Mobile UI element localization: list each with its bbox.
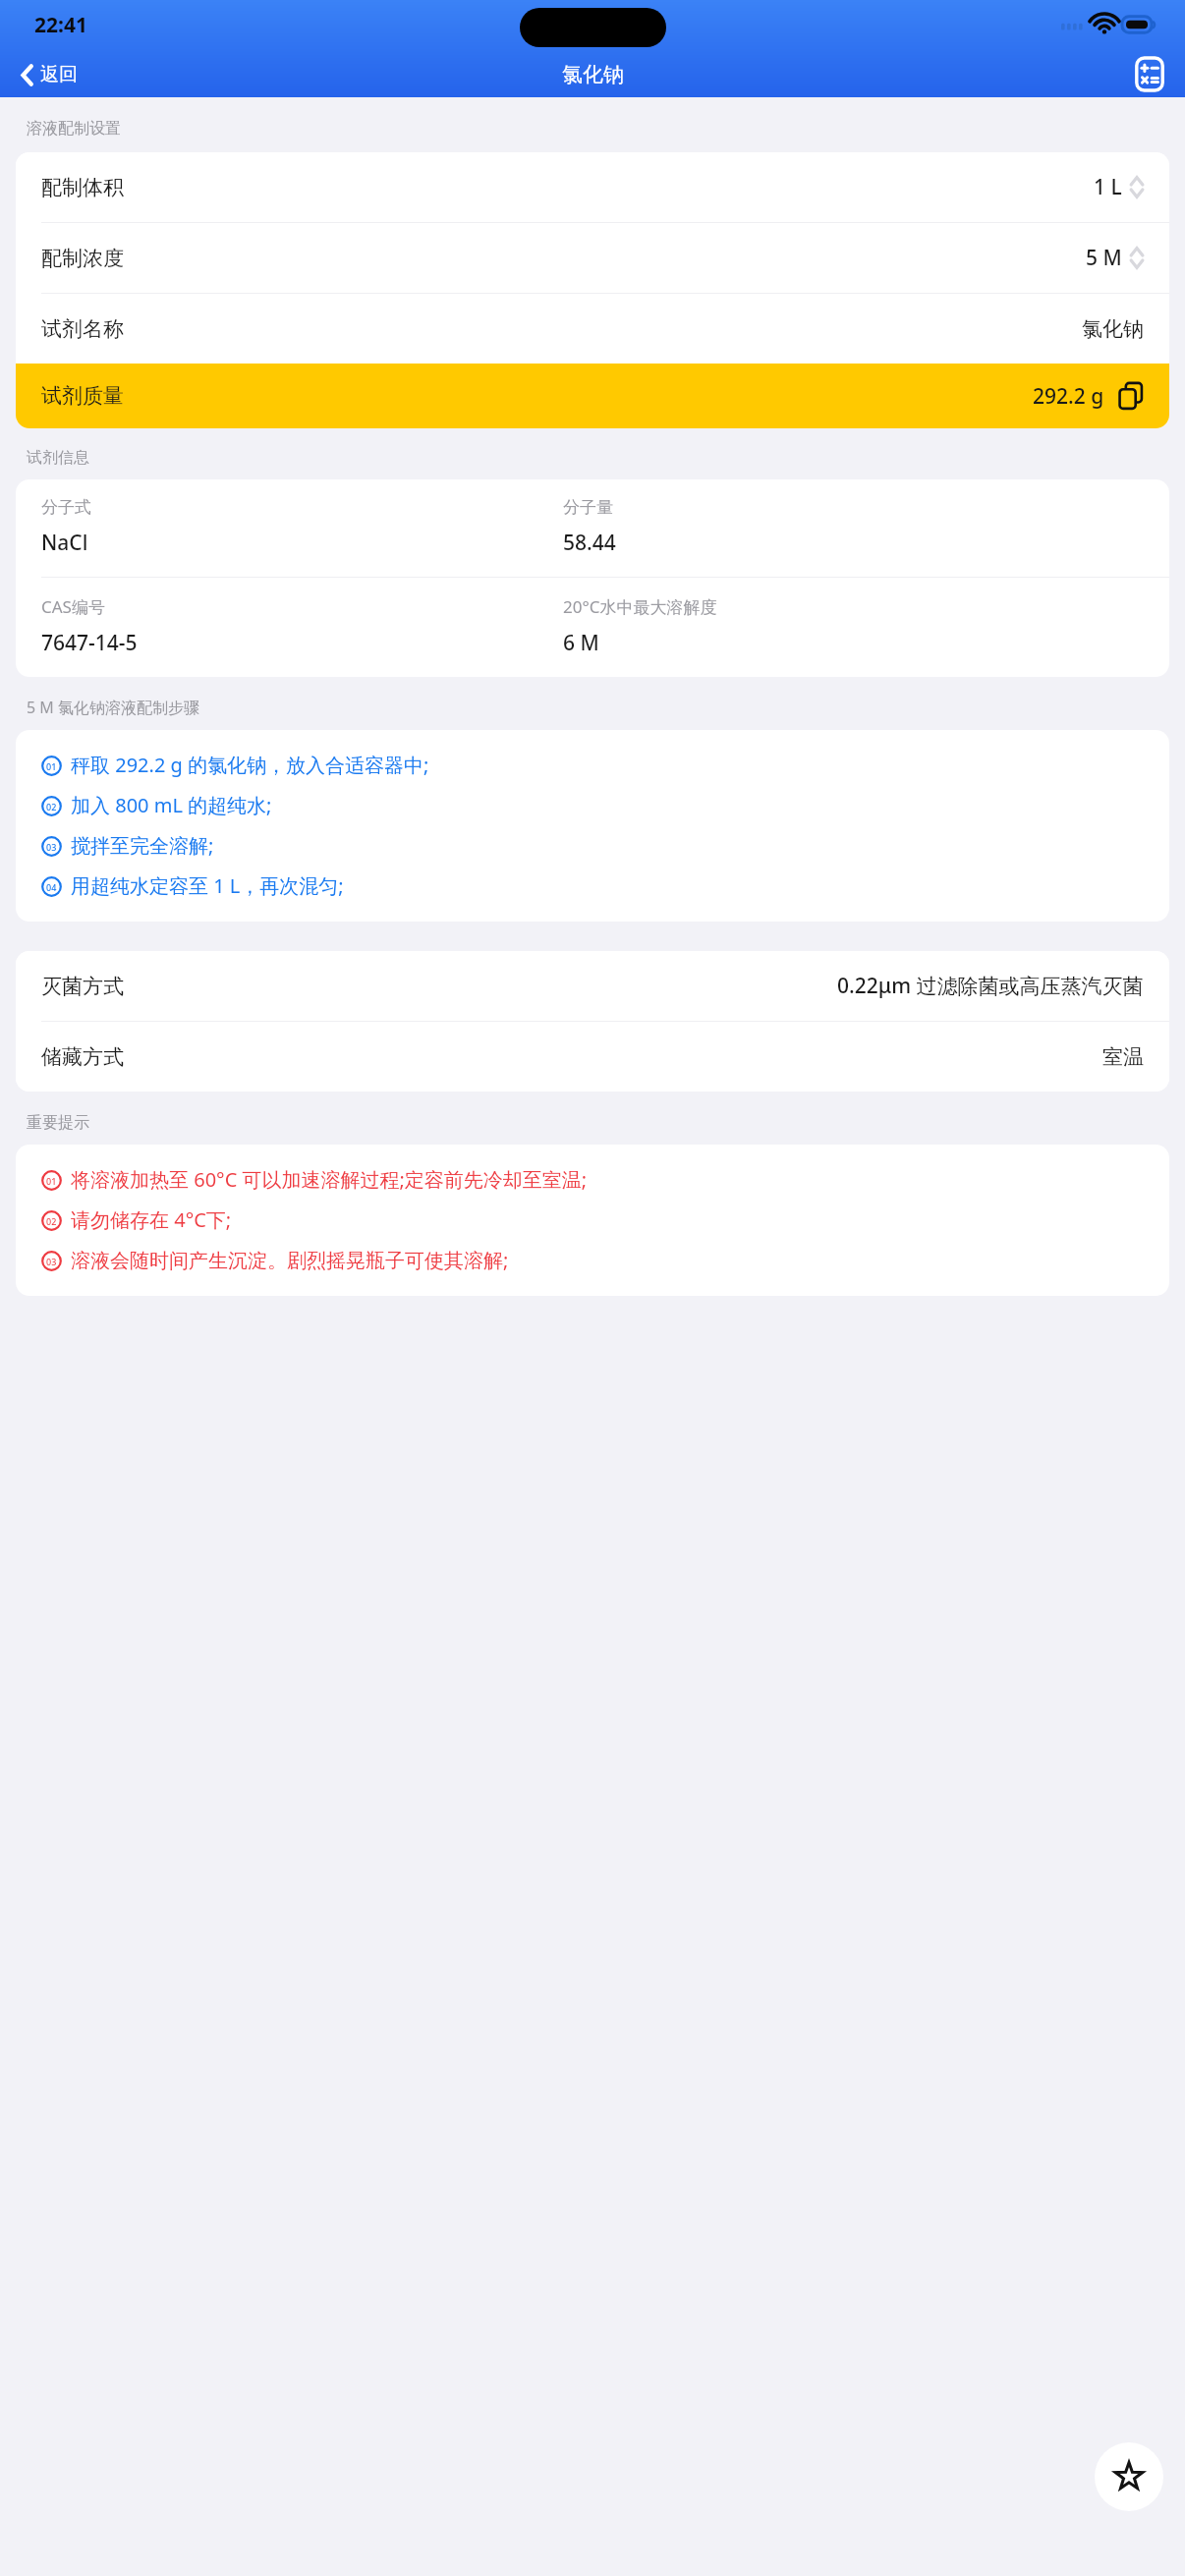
staticText: 02	[46, 1215, 57, 1227]
button[interactable]: 02	[16, 1200, 1169, 1240]
button[interactable]: 分子式	[16, 479, 1169, 577]
button[interactable]: 01	[16, 745, 1169, 785]
staticText: 22:41	[34, 11, 87, 39]
button[interactable]: 01	[16, 1159, 1169, 1200]
button[interactable]: Calculator	[1130, 53, 1169, 95]
button[interactable]: 返回	[14, 58, 85, 91]
button[interactable]: 02	[16, 785, 1169, 825]
staticText: 配制浓度	[41, 246, 124, 271]
staticText: 将溶液加热至 60°C 可以加速溶解过程;定容前先冷却至室温;	[71, 1166, 870, 1193]
staticText: 分子量	[563, 497, 613, 518]
staticText: 灭菌方式	[41, 974, 124, 999]
staticText: 氯化钠	[1082, 316, 1144, 342]
button[interactable]: 配制体积	[16, 152, 1169, 222]
staticText: 试剂名称	[41, 316, 124, 342]
staticText: 01	[46, 1175, 57, 1187]
staticText: 试剂信息	[27, 448, 89, 468]
staticText: 0.22μm 过滤除菌或高压蒸汽灭菌	[837, 972, 1144, 1000]
staticText: 室温	[1102, 1044, 1144, 1070]
button[interactable]: Favorite	[1095, 2442, 1163, 2511]
staticText: 请勿储存在 4°C下;	[71, 1206, 1150, 1233]
other: Copy	[1118, 382, 1144, 410]
button[interactable]: 灭菌方式	[16, 951, 1169, 1021]
staticText: 秤取 292.2 g 的氯化钠，放入合适容器中;	[71, 752, 1150, 778]
staticText: 返回	[40, 63, 78, 86]
staticText: 搅拌至完全溶解;	[71, 832, 1150, 859]
staticText: 5 M	[1086, 244, 1122, 272]
staticText: CAS编号	[41, 595, 105, 618]
staticText: 1 L	[1094, 173, 1122, 201]
staticText: 03	[46, 1256, 57, 1267]
button[interactable]: 储藏方式	[16, 1022, 1169, 1092]
staticText: 溶液会随时间产生沉淀。剧烈摇晃瓶子可使其溶解;	[71, 1247, 1150, 1273]
staticText: 配制体积	[41, 175, 124, 200]
staticText: 储藏方式	[41, 1044, 124, 1070]
staticText: 氯化钠	[562, 62, 624, 87]
staticText: 用超纯水定容至 1 L，再次混匀;	[71, 872, 1150, 899]
staticText: 5 M 氯化钠溶液配制步骤	[27, 697, 199, 718]
button[interactable]: 试剂质量	[16, 364, 1169, 428]
button[interactable]: 配制浓度	[16, 223, 1169, 293]
staticText: 重要提示	[27, 1113, 89, 1133]
staticText: 7647-14-5	[41, 629, 138, 657]
staticText: 6 M	[563, 629, 599, 657]
staticText: 加入 800 mL 的超纯水;	[71, 792, 1150, 818]
staticText: 58.44	[563, 529, 616, 557]
staticText: 分子式	[41, 497, 91, 518]
staticText: NaCl	[41, 529, 88, 557]
staticText: 03	[46, 841, 57, 853]
button[interactable]: 04	[16, 866, 1169, 906]
staticText: 01	[46, 760, 57, 772]
staticText: 02	[46, 801, 57, 812]
staticText: 20°C水中最大溶解度	[563, 595, 717, 618]
button[interactable]: 03	[16, 825, 1169, 866]
button[interactable]: CAS编号	[16, 578, 1169, 677]
staticText: 试剂质量	[41, 383, 124, 409]
staticText: 溶液配制设置	[27, 119, 121, 139]
staticText: 04	[46, 881, 57, 893]
button[interactable]: 03	[16, 1240, 1169, 1280]
button[interactable]: 试剂名称	[16, 294, 1169, 364]
staticText: 292.2 g	[1033, 382, 1104, 411]
